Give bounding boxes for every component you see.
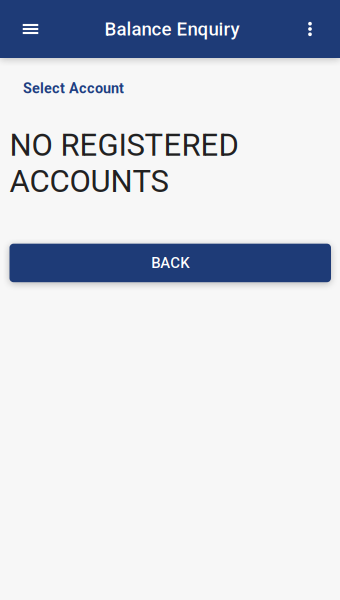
staticText: NO REGISTERED ACCOUNTS: [9, 127, 238, 200]
staticText: Balance Enquiry: [104, 18, 239, 40]
staticText: BACK: [151, 254, 189, 272]
button[interactable]: Menu: [9, 0, 52, 58]
staticText: Select Account: [23, 80, 124, 97]
button[interactable]: More options: [289, 0, 331, 58]
button[interactable]: BACK: [9, 244, 331, 282]
